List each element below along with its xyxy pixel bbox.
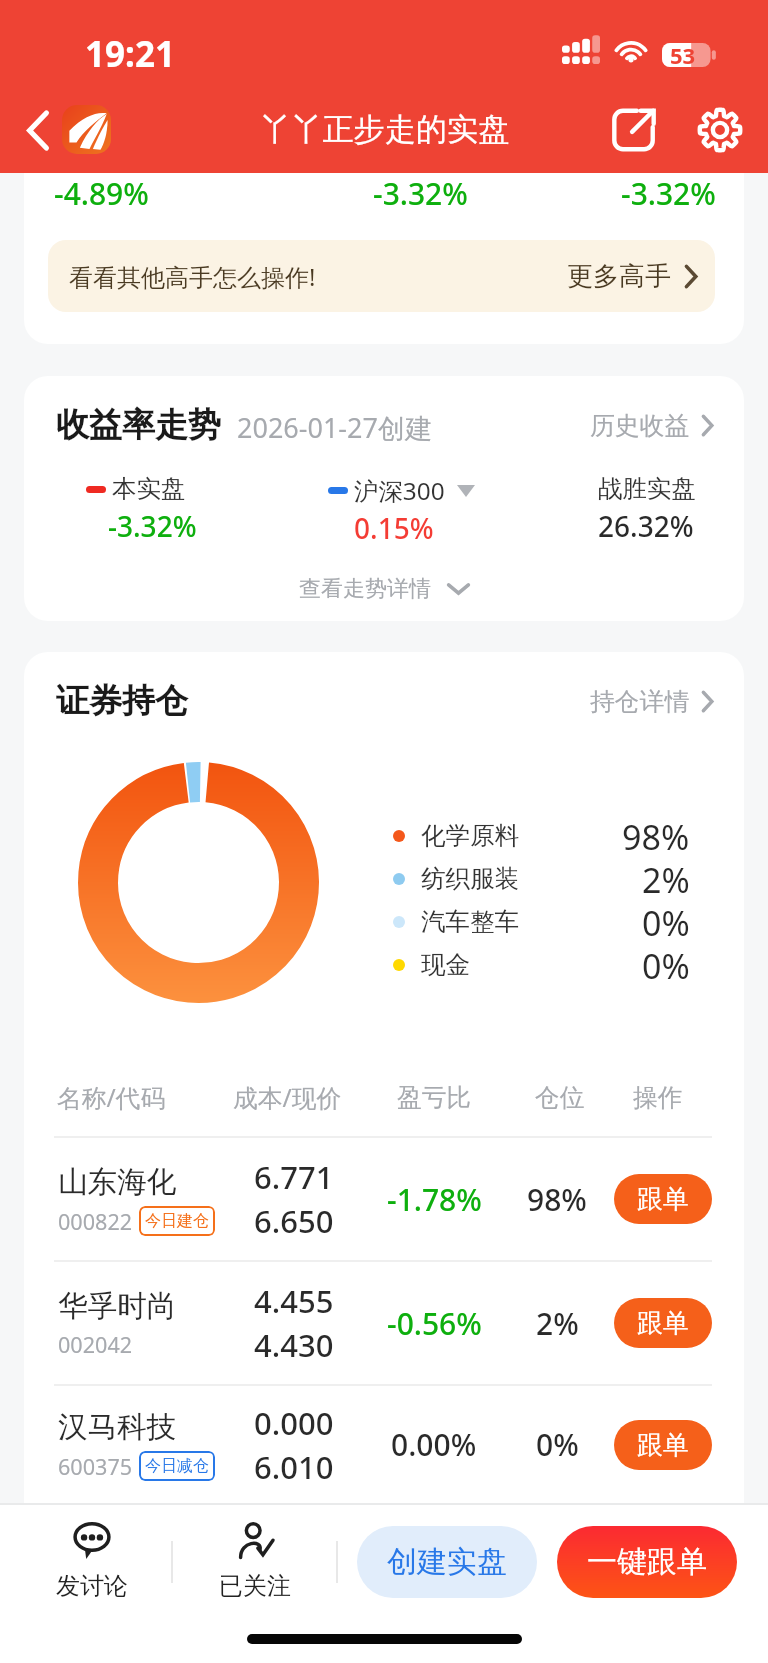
staticText: 化学原料 <box>421 820 520 851</box>
staticText: 操作 <box>633 1082 683 1113</box>
staticText: 4.455 <box>254 1280 334 1322</box>
staticText: 6.010 <box>254 1446 334 1488</box>
staticText: 跟单 <box>637 1183 689 1216</box>
staticText: 汉马科技 <box>58 1408 177 1445</box>
button[interactable]: 一键跟单 <box>557 1526 737 1598</box>
staticText: -4.89% <box>54 173 149 214</box>
staticText: 历史收益 <box>590 410 690 441</box>
button[interactable]: 创建实盘 <box>357 1526 537 1598</box>
staticText: -0.56% <box>387 1303 482 1344</box>
button[interactable]: 查看走势详情 <box>24 575 744 621</box>
staticText: 002042 <box>58 1330 133 1359</box>
staticText: -3.32% <box>621 173 716 214</box>
staticText: 汽车整车 <box>421 906 520 937</box>
staticText: 沪深300 <box>354 474 445 507</box>
button[interactable]: 华孚时尚 <box>24 1262 744 1384</box>
staticText: 丫丫正步走的实盘 <box>260 110 510 149</box>
staticText: 名称/代码 <box>57 1080 233 1114</box>
staticText: 0.00% <box>391 1424 477 1465</box>
staticText: 更多高手 <box>567 260 671 293</box>
staticText: 跟单 <box>637 1307 689 1340</box>
staticText: -3.32% <box>373 173 468 214</box>
staticText: 盈亏比 <box>397 1082 535 1113</box>
button[interactable]: 看看其他高手怎么操作! <box>48 240 715 312</box>
staticText: 000822 <box>58 1207 133 1236</box>
staticText: 已关注 <box>219 1571 291 1601</box>
button[interactable]: 历史收益 <box>590 410 713 441</box>
staticText: 证券持仓 <box>56 680 188 722</box>
button[interactable]: App logo <box>62 105 111 154</box>
staticText: 纺织服装 <box>421 863 520 894</box>
staticText: 华孚时尚 <box>58 1287 177 1324</box>
staticText: 0.000 <box>254 1402 334 1444</box>
staticText: 0.15% <box>354 509 434 547</box>
staticText: 山东海化 <box>58 1163 177 1200</box>
staticText: 98% <box>527 1179 587 1220</box>
staticText: 发讨论 <box>56 1571 128 1601</box>
button[interactable]: 持仓详情 <box>590 686 713 717</box>
button[interactable]: Back <box>4 96 72 164</box>
staticText: 一键跟单 <box>587 1543 707 1581</box>
staticText: 4.430 <box>254 1324 334 1366</box>
staticText: 仓位 <box>535 1082 633 1113</box>
staticText: 19:21 <box>85 30 175 78</box>
staticText: 0% <box>642 900 690 943</box>
staticText: 跟单 <box>637 1429 689 1462</box>
button[interactable]: 发讨论 <box>26 1523 158 1601</box>
staticText: 2026-01-27创建 <box>237 409 432 446</box>
staticText: 看看其他高手怎么操作! <box>69 260 316 293</box>
button[interactable]: 跟单 <box>614 1174 712 1224</box>
staticText: 26.32% <box>598 507 694 545</box>
staticText: 0% <box>536 1424 579 1465</box>
staticText: 创建实盘 <box>387 1543 507 1581</box>
staticText: 2% <box>536 1303 579 1344</box>
button[interactable]: 跟单 <box>614 1420 712 1470</box>
button[interactable]: Settings <box>682 92 758 168</box>
button[interactable]: Share <box>596 92 672 168</box>
staticText: 6.650 <box>254 1200 334 1242</box>
staticText: 2% <box>642 857 690 900</box>
staticText: 持仓详情 <box>590 686 690 717</box>
staticText: 本实盘 <box>112 474 186 505</box>
staticText: -3.32% <box>108 507 197 545</box>
staticText: 今日建仓 <box>145 1211 209 1231</box>
staticText: 600375 <box>58 1452 133 1481</box>
staticText: 战胜实盘 <box>598 474 696 505</box>
staticText: 0% <box>642 943 690 986</box>
button[interactable]: 汉马科技 <box>24 1386 744 1503</box>
staticText: -1.78% <box>387 1179 482 1220</box>
button[interactable]: 已关注 <box>189 1523 321 1601</box>
staticText: 今日减仓 <box>145 1456 209 1476</box>
staticText: 6.771 <box>254 1156 334 1198</box>
staticText: 收益率走势 <box>56 404 221 446</box>
staticText: 98% <box>622 814 690 857</box>
staticText: 53 <box>670 40 696 70</box>
staticText: 成本/现价 <box>233 1080 397 1114</box>
staticText: 查看走势详情 <box>299 575 431 603</box>
button[interactable]: 跟单 <box>614 1298 712 1348</box>
button[interactable]: 山东海化 <box>24 1138 744 1260</box>
staticText: 现金 <box>421 949 471 980</box>
